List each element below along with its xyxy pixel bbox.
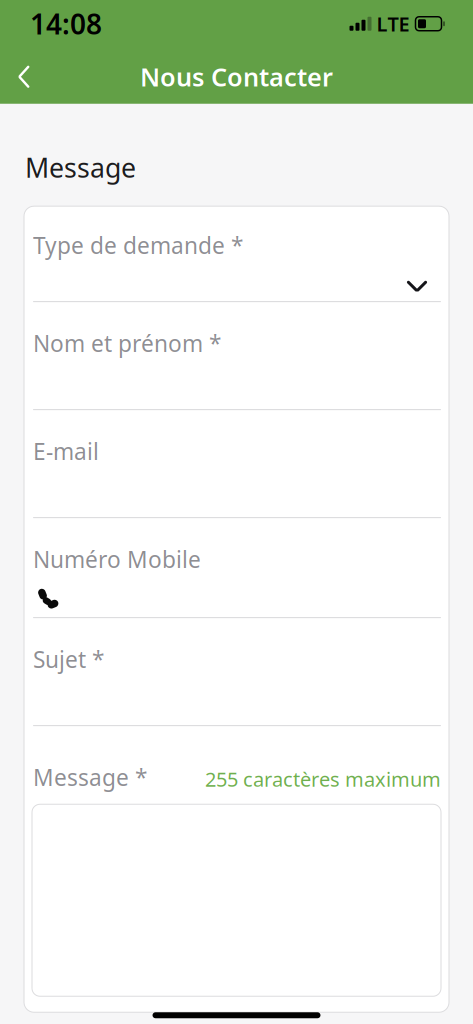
staticText: 14:08 <box>30 5 102 42</box>
staticText: Message * <box>33 762 147 792</box>
staticText: Nom et prénom * <box>33 328 221 358</box>
button[interactable]: Type de demande * <box>24 206 449 302</box>
staticText: Message <box>25 150 136 185</box>
button[interactable]: Sujet * <box>24 618 449 726</box>
button[interactable]: E-mail <box>24 410 449 518</box>
button[interactable]: Numéro Mobile <box>24 518 449 618</box>
button[interactable]: Nom et prénom * <box>24 302 449 410</box>
staticText: Nous Contacter <box>140 60 333 93</box>
staticText: LTE <box>376 10 409 37</box>
staticText: Type de demande * <box>33 230 243 260</box>
staticText: E-mail <box>33 436 99 466</box>
staticText: Numéro Mobile <box>33 544 201 574</box>
staticText: Sujet * <box>33 644 104 674</box>
button[interactable]: Back <box>0 50 48 104</box>
staticText: 255 caractères maximum <box>205 766 441 792</box>
